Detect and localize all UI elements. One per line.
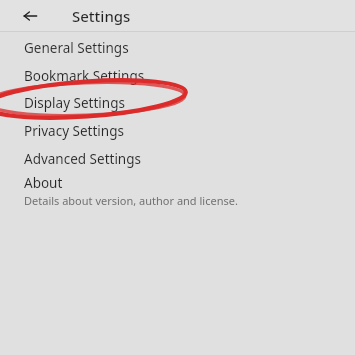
staticText: Display Settings (24, 94, 125, 112)
staticText: Privacy Settings (24, 122, 124, 140)
button[interactable]: General Settings (0, 37, 355, 59)
staticText: General Settings (24, 39, 129, 57)
staticText: Bookmark Settings (24, 67, 145, 85)
button[interactable]: Privacy Settings (0, 120, 355, 142)
button[interactable]: Bookmark Settings (0, 65, 355, 87)
button[interactable]: Display Settings (0, 92, 355, 114)
staticText: Advanced Settings (24, 150, 141, 168)
staticText: Details about version, author and licens… (24, 193, 238, 208)
staticText: About (24, 174, 63, 192)
button[interactable]: About (0, 172, 355, 210)
button[interactable]: Advanced Settings (0, 148, 355, 170)
staticText: Settings (72, 6, 131, 26)
button[interactable]: Back (16, 2, 44, 30)
